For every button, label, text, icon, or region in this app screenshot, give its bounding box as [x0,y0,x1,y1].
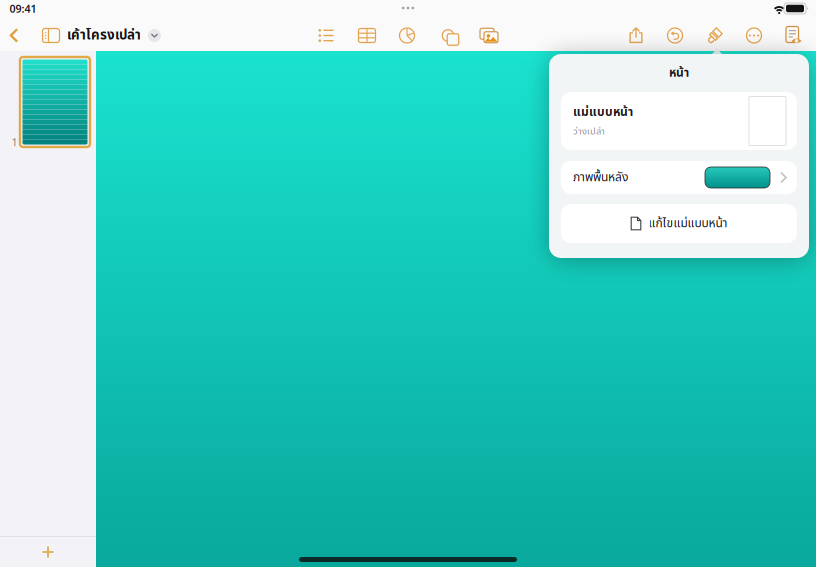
button[interactable]: Media [474,21,504,49]
staticText: 1 [11,135,17,149]
staticText: หน้า [669,64,689,82]
button[interactable]: แม่แบบหน้า [561,92,797,150]
staticText: เค้าโครงเปล่า [67,25,141,45]
button[interactable]: Back [1,22,27,48]
button[interactable]: More [739,21,769,49]
staticText: 09:41 [9,1,36,16]
button[interactable]: Sidebar [38,22,64,48]
staticText: แม่แบบหน้า [573,103,633,121]
button[interactable]: Lists [311,21,341,49]
button[interactable]: เค้าโครงเปล่า [67,22,161,48]
button[interactable]: แก้ไขแม่แบบหน้า [561,204,797,243]
button[interactable]: Document [779,21,809,49]
button[interactable]: Share [621,21,651,49]
button[interactable]: Add slide [0,537,96,567]
staticText: ว่างเปล่า [573,124,605,139]
staticText: ภาพพื้นหลัง [573,168,628,186]
button[interactable]: Table [352,21,382,49]
button[interactable]: Chart [392,21,422,49]
button[interactable] [20,57,90,147]
button[interactable]: Format [700,21,730,49]
button[interactable]: ภาพพื้นหลัง [561,161,797,194]
staticText: แก้ไขแม่แบบหน้า [648,214,727,232]
button[interactable]: Shape [433,21,463,49]
button[interactable]: Undo [660,21,690,49]
